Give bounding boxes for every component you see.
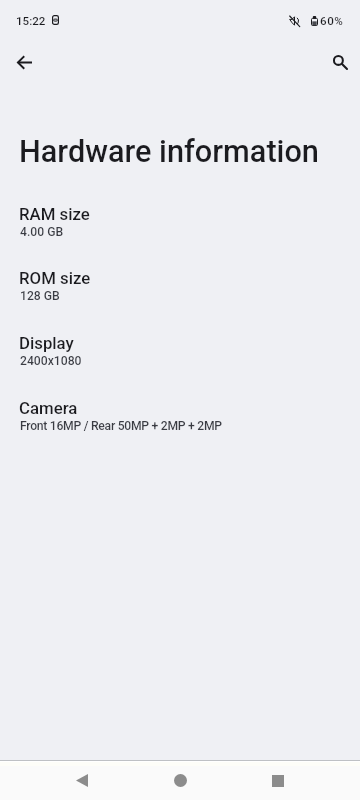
staticText: 2400x1080 <box>20 354 82 368</box>
staticText: 60% <box>320 14 344 28</box>
button[interactable]: Camera <box>0 398 360 446</box>
staticText: RAM size <box>19 204 90 224</box>
button[interactable]: Navigate up <box>0 38 48 86</box>
staticText: ROM size <box>19 268 91 288</box>
button[interactable]: ROM size <box>0 268 360 316</box>
staticText: 128 GB <box>20 289 60 303</box>
button[interactable]: Recent apps <box>254 761 302 800</box>
button[interactable]: Back <box>58 761 106 800</box>
staticText: Camera <box>19 398 78 418</box>
staticText: Front 16MP / Rear 50MP + 2MP + 2MP <box>20 419 222 433</box>
button[interactable]: Display <box>0 333 360 381</box>
button[interactable]: RAM size <box>0 204 360 252</box>
button[interactable]: Home <box>156 761 204 800</box>
staticText: 15:22 <box>16 14 46 28</box>
button[interactable]: Search <box>316 38 360 86</box>
staticText: 4.00 GB <box>20 225 64 239</box>
staticText: Display <box>19 333 74 353</box>
staticText: Hardware information <box>19 134 319 170</box>
